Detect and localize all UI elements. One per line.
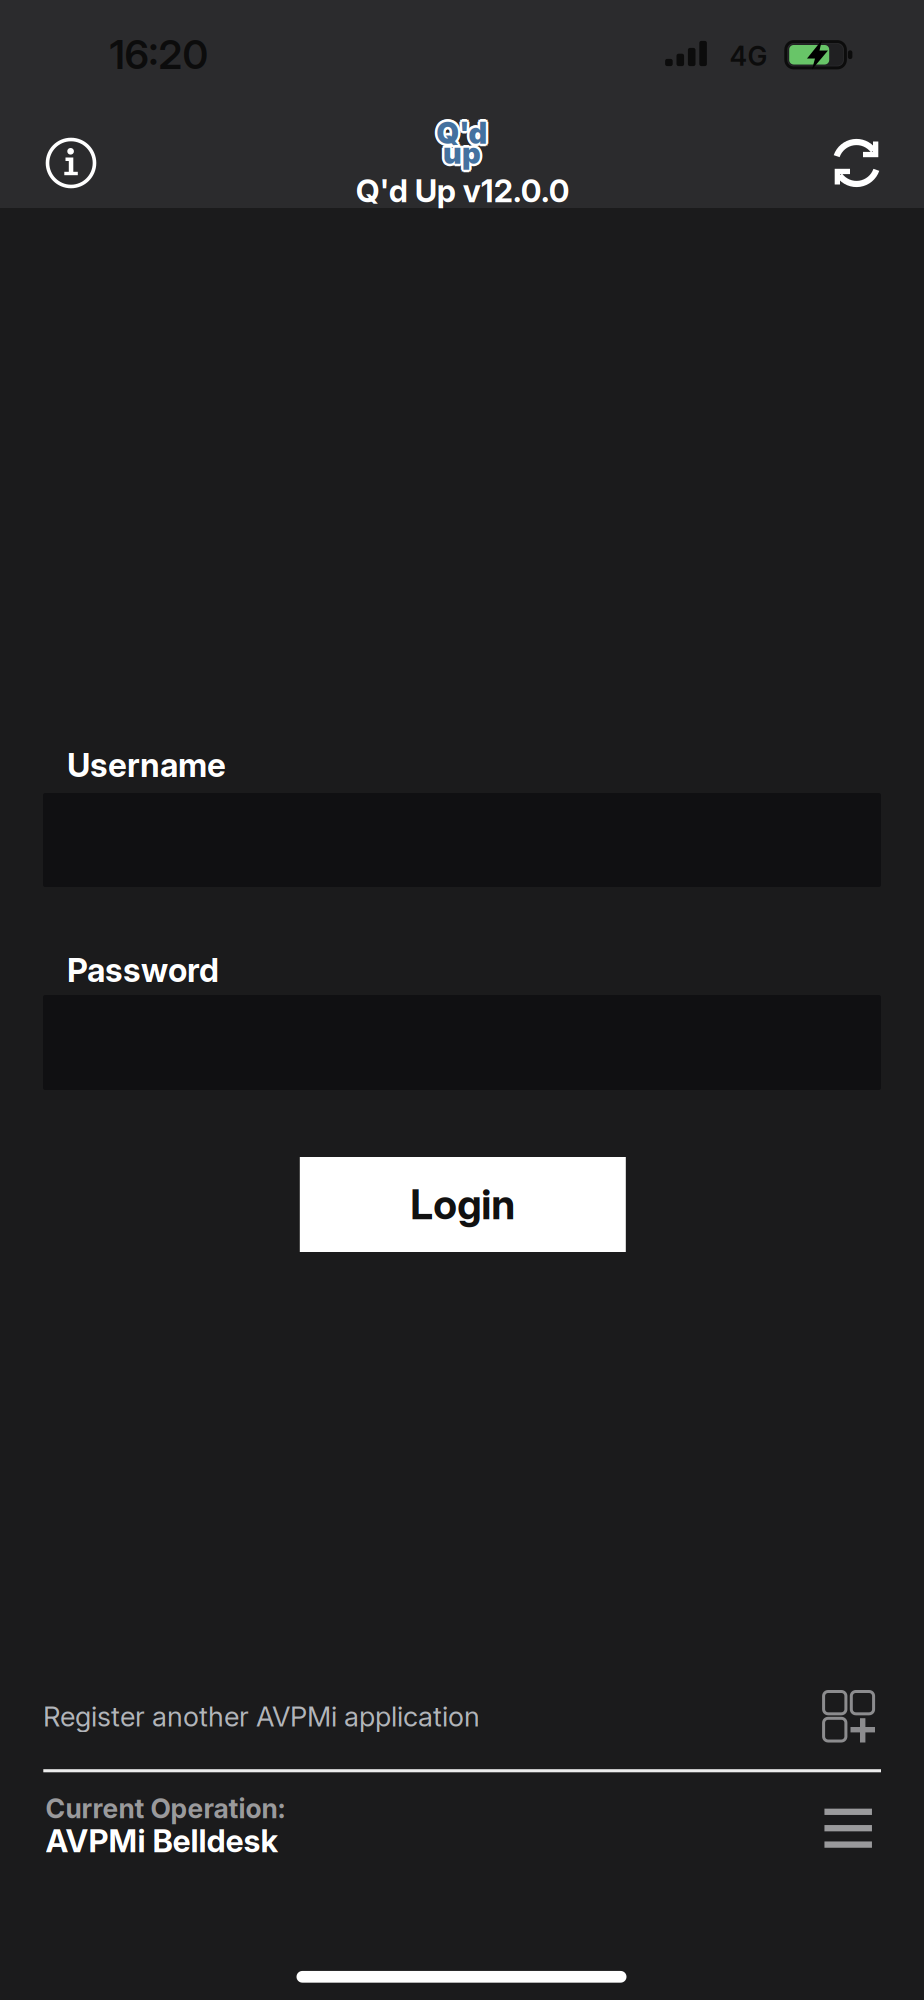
staticText: AVPMi Belldesk bbox=[46, 1822, 279, 1860]
staticText: Q'd bbox=[435, 117, 486, 153]
staticText: Q'd bbox=[436, 113, 487, 148]
button[interactable]: Login bbox=[300, 1157, 626, 1252]
staticText: Q'd bbox=[436, 115, 487, 151]
staticText: Q'd Up v12.0.0 bbox=[356, 172, 570, 210]
staticText: Q'd bbox=[434, 115, 485, 151]
button[interactable]: Refresh bbox=[828, 135, 884, 191]
staticText: up bbox=[441, 133, 479, 169]
staticText: 16:20 bbox=[109, 30, 208, 79]
staticText: up bbox=[443, 133, 481, 168]
staticText: up bbox=[443, 138, 481, 173]
staticText: Q'd bbox=[438, 113, 489, 149]
staticText: up bbox=[445, 133, 483, 169]
staticText: Q'd bbox=[438, 117, 489, 153]
staticText: up bbox=[445, 137, 483, 173]
button[interactable]: Menu bbox=[820, 1800, 876, 1856]
staticText: up bbox=[441, 137, 479, 173]
staticText: up bbox=[446, 135, 484, 171]
staticText: Username bbox=[67, 745, 226, 785]
staticText: up bbox=[443, 135, 481, 171]
staticText: 4G bbox=[729, 40, 767, 72]
button[interactable]: Info bbox=[44, 136, 98, 190]
staticText: Login bbox=[410, 1180, 515, 1229]
staticText: Register another AVPMi application bbox=[43, 1700, 480, 1733]
staticText: Current Operation: bbox=[46, 1792, 286, 1825]
button[interactable]: Register another AVPMi application bbox=[43, 1680, 881, 1752]
staticText: Password bbox=[67, 950, 219, 990]
staticText: Q'd bbox=[436, 118, 487, 153]
staticText: up bbox=[440, 135, 478, 171]
staticText: Q'd bbox=[439, 115, 490, 151]
staticText: Q'd bbox=[435, 113, 486, 149]
